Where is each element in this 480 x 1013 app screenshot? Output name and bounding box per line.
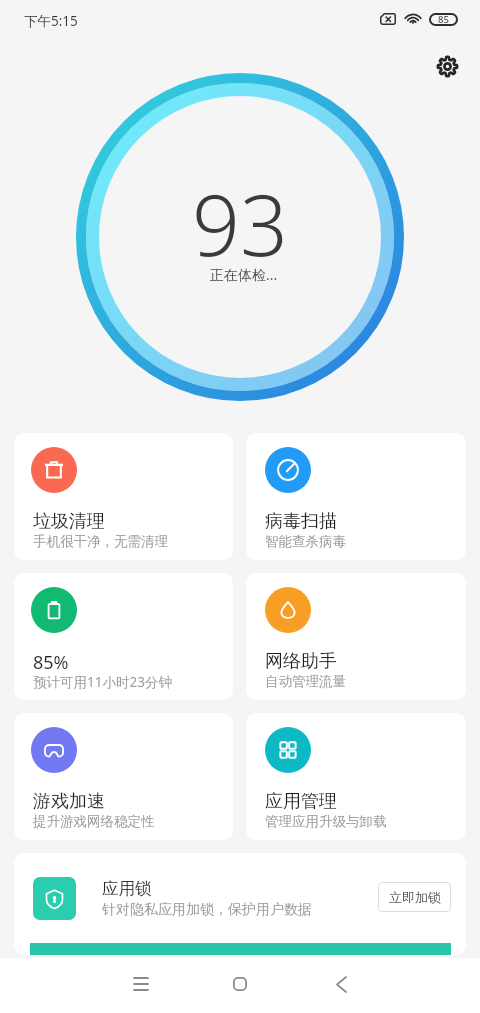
staticText: 85 (438, 13, 449, 26)
button[interactable]: 应用锁 (14, 853, 466, 955)
button[interactable]: Home (219, 963, 261, 1005)
staticText: 93 (192, 166, 288, 280)
staticText: 手机很干净，无需清理 (33, 533, 168, 550)
button[interactable]: 病毒扫描 (246, 433, 466, 560)
button[interactable]: 垃圾清理 (14, 433, 233, 560)
staticText: 垃圾清理 (33, 510, 105, 533)
button[interactable]: Back (320, 963, 362, 1005)
staticText: 正在体检... (210, 265, 278, 284)
staticText: 提升游戏网络稳定性 (33, 813, 155, 830)
staticText: 85% (33, 650, 69, 675)
button[interactable]: 应用管理 (246, 713, 466, 840)
staticText: 针对隐私应用加锁，保护用户数据 (102, 901, 312, 919)
button[interactable]: 立即加锁 (378, 882, 451, 912)
staticText: 预计可用11小时23分钟 (33, 673, 172, 691)
staticText: 立即加锁 (389, 889, 441, 905)
button[interactable]: 85% (14, 573, 233, 700)
button[interactable]: Settings (430, 49, 465, 84)
staticText: 应用锁 (102, 878, 152, 899)
staticText: 管理应用升级与卸载 (265, 813, 387, 830)
staticText: 游戏加速 (33, 790, 105, 813)
staticText: 病毒扫描 (265, 510, 337, 533)
staticText: 应用管理 (265, 790, 337, 813)
staticText: 下午5:15 (24, 12, 78, 30)
staticText: 网络助手 (265, 650, 337, 673)
staticText: 自动管理流量 (265, 673, 346, 690)
button[interactable]: Recent apps (120, 963, 162, 1005)
button[interactable]: 网络助手 (246, 573, 466, 700)
staticText: 智能查杀病毒 (265, 533, 346, 550)
button[interactable]: 游戏加速 (14, 713, 233, 840)
